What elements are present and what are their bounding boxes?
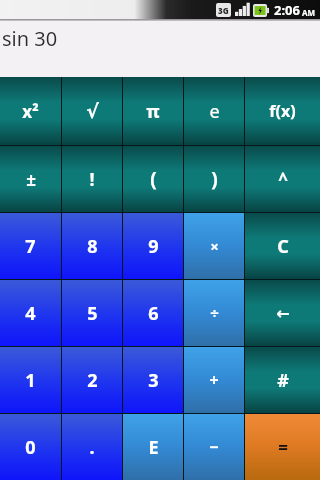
button[interactable]: 7 (0, 213, 61, 279)
staticText: e (209, 99, 220, 124)
button[interactable]: ← (245, 280, 320, 346)
staticText: # (277, 368, 289, 393)
button[interactable]: 0 (0, 414, 61, 480)
staticText: 1 (25, 368, 36, 393)
button[interactable]: E (123, 414, 183, 480)
staticText: 0 (25, 435, 36, 460)
staticText: x² (22, 100, 39, 123)
staticText: π (146, 99, 160, 124)
button[interactable]: f(x) (245, 77, 320, 145)
button[interactable]: ± (0, 146, 61, 212)
button[interactable]: 5 (62, 280, 122, 346)
staticText: f(x) (269, 100, 296, 122)
staticText: 7 (25, 234, 36, 259)
staticText: = (278, 436, 288, 459)
staticText: ) (211, 166, 218, 192)
button[interactable]: + (184, 347, 244, 413)
button[interactable]: ÷ (184, 280, 244, 346)
button[interactable]: ) (184, 146, 244, 212)
staticText: ÷ (210, 303, 219, 323)
staticText: 4 (25, 301, 36, 326)
button[interactable]: . (62, 414, 122, 480)
button[interactable]: 1 (0, 347, 61, 413)
button[interactable]: ! (62, 146, 122, 212)
staticText: E (148, 435, 159, 460)
staticText: × (210, 236, 219, 256)
button[interactable]: 9 (123, 213, 183, 279)
button[interactable]: − (184, 414, 244, 480)
staticText: 2:06 (274, 1, 300, 19)
button[interactable]: # (245, 347, 320, 413)
staticText: sin 30 (2, 25, 58, 52)
staticText: 9 (148, 234, 159, 259)
staticText: ^ (278, 168, 288, 191)
button[interactable]: × (184, 213, 244, 279)
button[interactable]: = (245, 414, 320, 480)
staticText: ± (26, 168, 36, 191)
button[interactable]: x² (0, 77, 61, 145)
staticText: 2 (87, 368, 98, 393)
button[interactable]: 4 (0, 280, 61, 346)
staticText: ← (276, 304, 290, 323)
button[interactable]: √ (62, 77, 122, 145)
staticText: . (89, 435, 95, 460)
staticText: + (209, 369, 219, 391)
button[interactable]: C (245, 213, 320, 279)
staticText: 8 (87, 234, 98, 259)
button[interactable]: π (123, 77, 183, 145)
staticText: C (277, 234, 289, 259)
staticText: √ (86, 100, 99, 122)
button[interactable]: 3 (123, 347, 183, 413)
button[interactable]: 8 (62, 213, 122, 279)
button[interactable]: e (184, 77, 244, 145)
staticText: AM (302, 7, 316, 18)
staticText: ( (150, 166, 157, 192)
button[interactable]: ^ (245, 146, 320, 212)
staticText: 6 (148, 301, 159, 326)
staticText: 3G (218, 5, 229, 16)
staticText: 5 (87, 301, 98, 326)
staticText: 3 (148, 368, 159, 393)
staticText: ! (89, 167, 95, 192)
staticText: − (209, 436, 219, 458)
button[interactable]: 6 (123, 280, 183, 346)
button[interactable]: 2 (62, 347, 122, 413)
button[interactable]: ( (123, 146, 183, 212)
